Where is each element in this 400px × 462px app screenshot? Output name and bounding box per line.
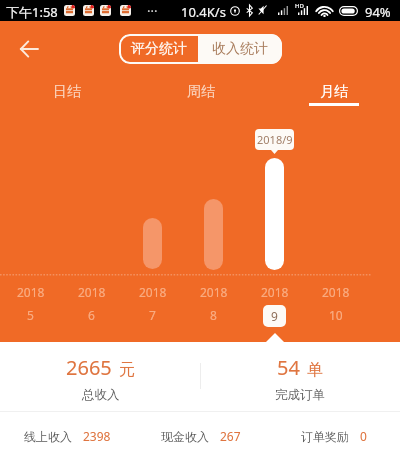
staticText: 总收入 — [82, 387, 120, 403]
staticText: 周结 — [187, 83, 215, 101]
button[interactable]: 评分统计 — [119, 34, 198, 64]
staticText: 10.4K/s — [181, 3, 226, 21]
staticText: 0 — [360, 428, 367, 444]
staticText: 54 — [277, 354, 300, 381]
staticText: 8 — [210, 307, 217, 323]
staticText: 收入统计 — [212, 40, 268, 58]
staticText: 单 — [307, 360, 323, 380]
staticText: 现金收入 — [161, 429, 209, 444]
staticText: 元 — [119, 360, 135, 380]
staticText: 94% — [365, 3, 391, 21]
staticText: 7 — [149, 307, 156, 323]
button[interactable]: 订单奖励 — [267, 412, 400, 460]
staticText: 日结 — [53, 83, 81, 101]
button[interactable]: 周结 — [134, 72, 267, 110]
staticText: 9 — [271, 308, 278, 324]
staticText: 评分统计 — [131, 40, 187, 58]
staticText: 2018 — [17, 284, 45, 300]
staticText: 完成订单 — [275, 387, 325, 403]
staticText: 下午1:58 — [6, 3, 58, 21]
staticText: 2018 — [78, 284, 106, 300]
staticText: 2018/9 — [257, 132, 293, 147]
staticText: 2018 — [261, 284, 289, 300]
button[interactable]: 2665 — [40, 354, 160, 404]
button[interactable]: 月结 — [267, 72, 400, 110]
button[interactable]: 线上收入 — [0, 412, 134, 460]
staticText: 订单奖励 — [301, 429, 349, 444]
staticText: ··· — [147, 2, 158, 20]
staticText: 2665 — [66, 354, 112, 381]
staticText: HD — [295, 2, 304, 10]
staticText: 月结 — [320, 83, 348, 101]
staticText: 6 — [88, 307, 95, 323]
staticText: 2018 — [139, 284, 167, 300]
button[interactable]: 收入统计 — [198, 34, 282, 64]
button[interactable]: 现金收入 — [134, 412, 267, 460]
button[interactable]: 54 — [240, 354, 360, 404]
button[interactable]: 日结 — [0, 72, 134, 110]
button[interactable]: Back — [12, 32, 46, 66]
staticText: 线上收入 — [24, 429, 72, 444]
staticText: 267 — [220, 428, 241, 444]
staticText: 2018 — [322, 284, 350, 300]
staticText: 2018 — [200, 284, 228, 300]
staticText: 5 — [27, 307, 34, 323]
staticText: 10 — [329, 307, 343, 323]
staticText: 2398 — [83, 428, 111, 444]
